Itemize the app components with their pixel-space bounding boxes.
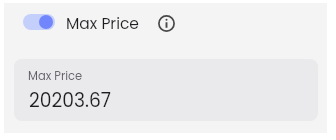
button[interactable]: Info about max price — [154, 11, 178, 35]
button[interactable]: Max Price — [66, 13, 139, 33]
staticText: Max Price — [28, 68, 83, 84]
staticText: Max Price — [66, 13, 139, 33]
staticText: 20203.67 — [29, 87, 111, 113]
button[interactable]: Max Price — [14, 59, 318, 121]
button[interactable]: Toggle max price — [19, 6, 59, 38]
